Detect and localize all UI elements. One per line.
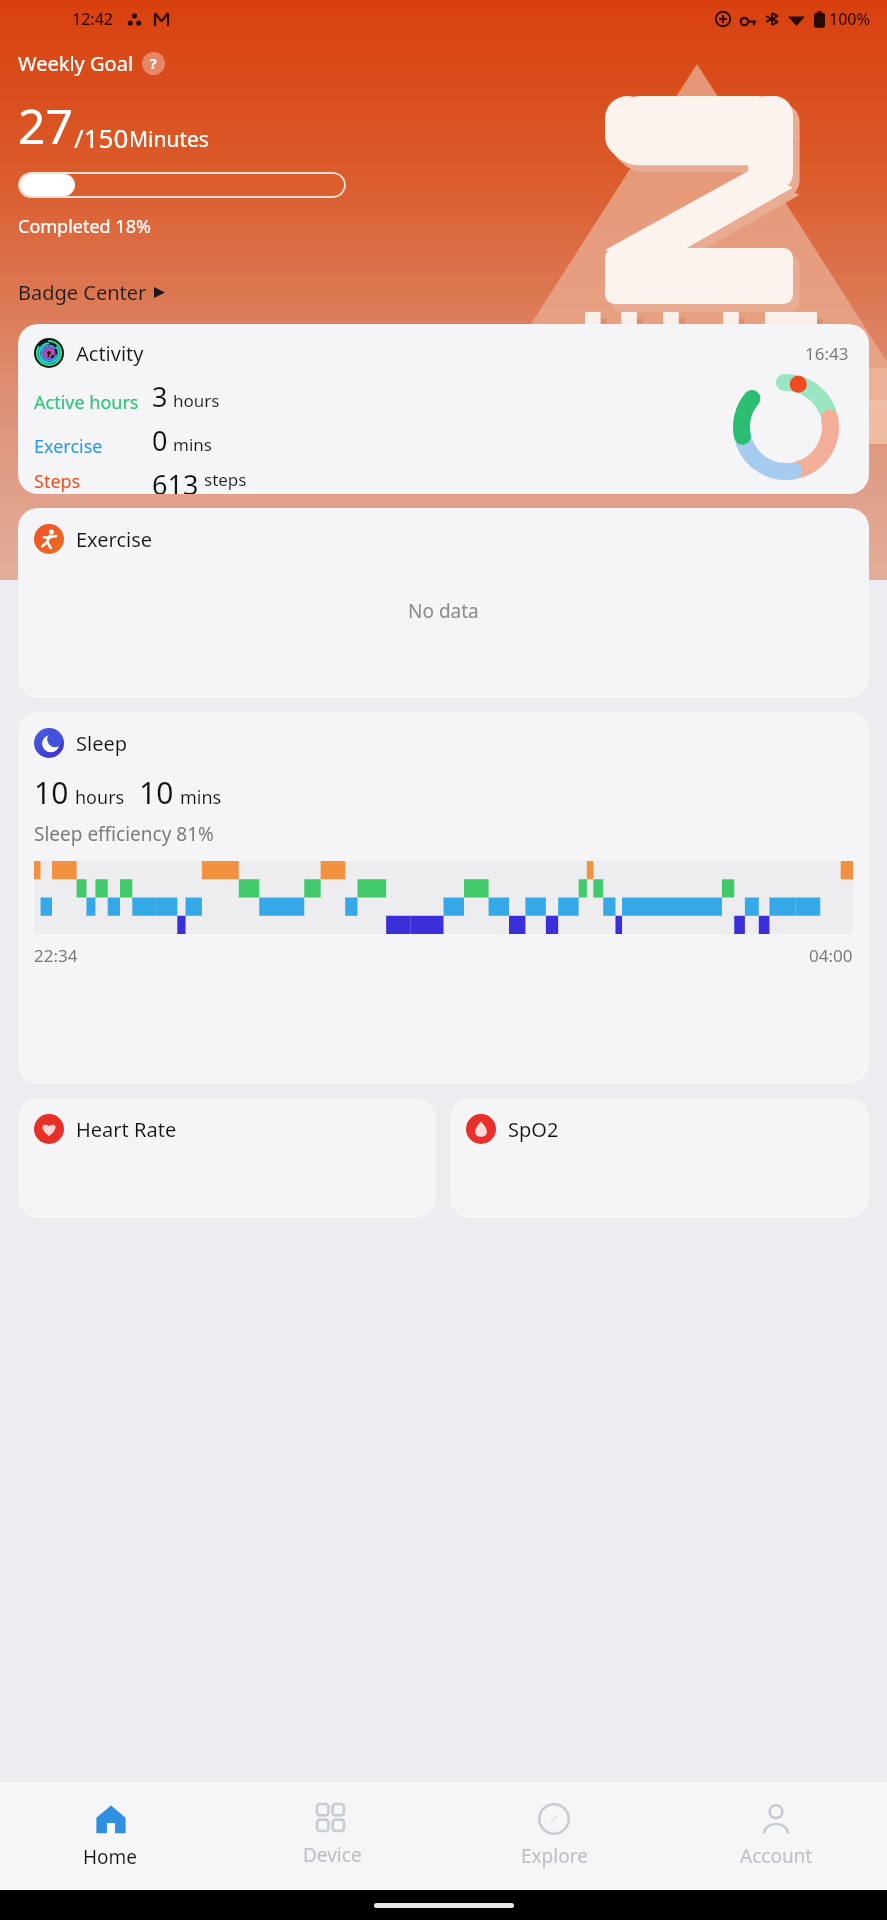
staticText: 613 — [152, 466, 199, 494]
staticText: Exercise — [76, 526, 153, 553]
staticText: 04:00 — [809, 944, 853, 967]
staticText: Device — [303, 1842, 362, 1868]
button[interactable]: Activity — [18, 324, 869, 494]
button[interactable]: Home — [0, 1782, 221, 1890]
staticText: Explore — [521, 1843, 588, 1869]
staticText: 10 — [139, 772, 174, 813]
button[interactable]: SpO2 — [450, 1098, 869, 1218]
button[interactable]: Badge Center — [18, 279, 165, 306]
button[interactable]: Heart Rate — [18, 1098, 436, 1218]
button[interactable]: Device — [221, 1782, 443, 1890]
staticText: Completed 18% — [18, 214, 151, 239]
other: Help — [142, 52, 165, 75]
staticText: hours — [75, 785, 125, 810]
staticText: 22:34 — [34, 944, 78, 967]
staticText: Heart Rate — [76, 1116, 177, 1143]
staticText: Minutes — [129, 125, 209, 154]
staticText: Steps — [34, 469, 81, 494]
staticText: 27 — [18, 93, 73, 158]
button[interactable]: Explore — [443, 1782, 665, 1890]
staticText: 16:43 — [805, 342, 849, 365]
staticText: mins — [180, 785, 222, 810]
staticText: 3 — [152, 378, 168, 415]
button[interactable]: Account — [665, 1782, 887, 1890]
staticText: Sleep efficiency 81% — [34, 821, 214, 847]
staticText: Home — [83, 1844, 138, 1870]
staticText: Account — [740, 1843, 813, 1869]
staticText: 0 — [152, 422, 168, 459]
staticText: steps — [204, 468, 247, 491]
button[interactable]: Exercise — [18, 508, 869, 698]
staticText: /150 — [74, 120, 129, 155]
staticText: Sleep — [76, 730, 127, 757]
staticText: Badge Center — [18, 279, 147, 306]
staticText: SpO2 — [508, 1116, 559, 1143]
staticText: Exercise — [34, 434, 103, 459]
staticText: mins — [173, 433, 212, 456]
staticText: Active hours — [34, 390, 139, 415]
staticText: hours — [173, 389, 220, 412]
button[interactable]: Sleep — [18, 712, 869, 1084]
staticText: ? — [150, 54, 157, 73]
staticText: 12:42 — [72, 8, 113, 30]
staticText: 10 — [34, 772, 69, 813]
staticText: 100% — [829, 8, 871, 30]
staticText: No data — [408, 598, 479, 624]
button[interactable]: Weekly Goal — [18, 50, 165, 77]
staticText: Weekly Goal — [18, 50, 134, 77]
staticText: Activity — [76, 340, 144, 367]
